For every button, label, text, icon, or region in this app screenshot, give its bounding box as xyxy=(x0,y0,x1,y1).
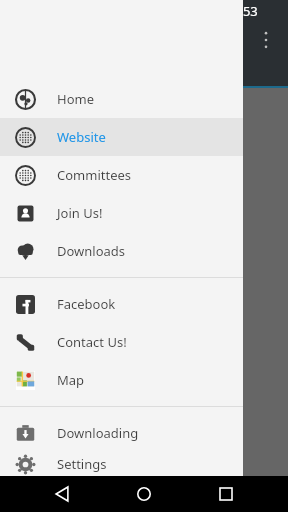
button[interactable]: Committees xyxy=(0,156,243,194)
staticText: Map xyxy=(57,371,85,389)
button[interactable]: More options xyxy=(259,28,273,52)
button[interactable]: Facebook xyxy=(0,285,243,323)
staticText: Facebook xyxy=(57,295,116,313)
button[interactable]: Settings xyxy=(0,452,243,476)
button[interactable]: Back xyxy=(42,476,82,512)
staticText: Home xyxy=(57,90,94,108)
staticText: Settings xyxy=(57,455,107,473)
staticText: Join Us! xyxy=(57,204,103,222)
button[interactable]: Join Us! xyxy=(0,194,243,232)
button[interactable]: Downloads xyxy=(0,232,243,270)
staticText: 2:53 xyxy=(232,2,258,20)
staticText: Committees xyxy=(57,166,132,184)
button[interactable]: Home xyxy=(0,80,243,118)
staticText: Website xyxy=(57,128,106,146)
staticText: Contact Us! xyxy=(57,333,127,351)
button[interactable]: Contact Us! xyxy=(0,323,243,361)
button[interactable]: Map xyxy=(0,361,243,399)
button[interactable]: Home xyxy=(124,476,164,512)
button[interactable]: Recent apps xyxy=(206,476,246,512)
staticText: Downloading xyxy=(57,424,139,442)
button[interactable]: Website xyxy=(0,118,243,156)
button[interactable]: Downloading xyxy=(0,414,243,452)
staticText: Downloads xyxy=(57,242,126,260)
